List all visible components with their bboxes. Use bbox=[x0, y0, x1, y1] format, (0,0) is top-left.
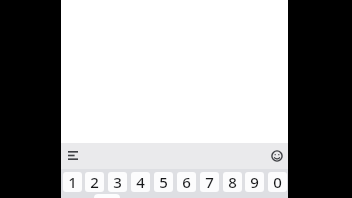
button[interactable]: Emoji bbox=[266, 143, 288, 169]
staticText: 3 bbox=[113, 172, 122, 192]
staticText: 7 bbox=[205, 172, 214, 192]
button[interactable]: 6 bbox=[177, 172, 196, 192]
button[interactable]: 2 bbox=[85, 172, 104, 192]
staticText: 1 bbox=[68, 172, 77, 192]
staticText: 5 bbox=[159, 172, 168, 192]
staticText: 6 bbox=[182, 172, 191, 192]
button[interactable]: 5 bbox=[154, 172, 173, 192]
button[interactable]: 0 bbox=[268, 172, 287, 192]
button[interactable]: 9 bbox=[245, 172, 264, 192]
button[interactable]: 1 bbox=[63, 172, 82, 192]
button[interactable]: 3 bbox=[108, 172, 127, 192]
staticText: 8 bbox=[228, 172, 237, 192]
button[interactable]: 4 bbox=[131, 172, 150, 192]
staticText: 4 bbox=[136, 172, 145, 192]
staticText: 2 bbox=[90, 172, 99, 192]
staticText: 9 bbox=[250, 172, 259, 192]
button[interactable]: 7 bbox=[200, 172, 219, 192]
button[interactable]: 8 bbox=[223, 172, 242, 192]
staticText: 0 bbox=[273, 172, 282, 192]
button[interactable]: Menu bbox=[62, 142, 84, 168]
